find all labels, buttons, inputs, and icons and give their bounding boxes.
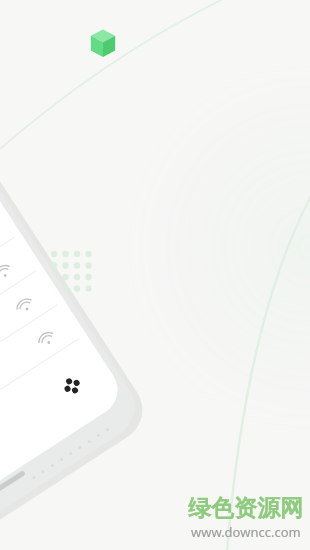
staticText: 绿色资源网 bbox=[188, 494, 303, 523]
staticText: www.downcc.com bbox=[191, 523, 301, 541]
button[interactable]: 3D cube logo bbox=[87, 23, 119, 55]
